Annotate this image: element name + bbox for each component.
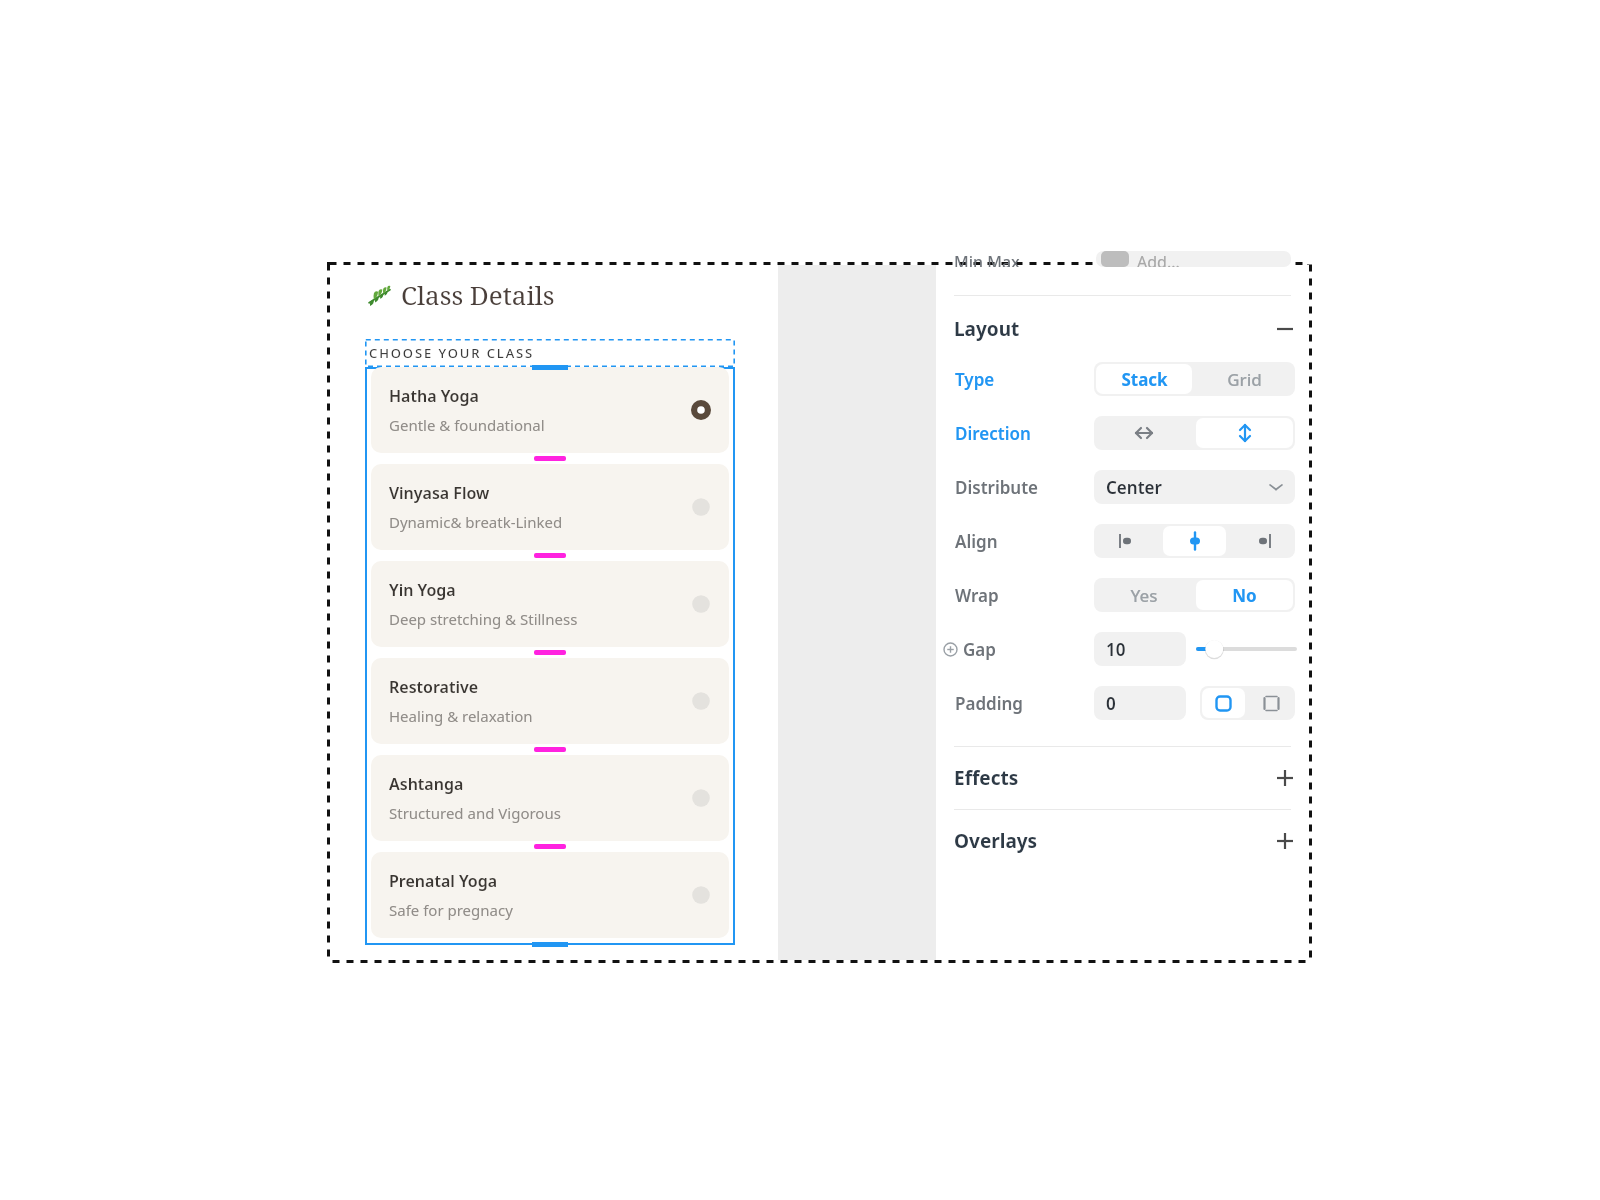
staticText: Effects: [954, 765, 1019, 791]
button[interactable]: Align start: [1096, 526, 1159, 556]
staticText: Type: [955, 368, 995, 391]
staticText: Restorative: [389, 676, 479, 698]
button[interactable]: Vertical direction: [1196, 418, 1293, 448]
staticText: Add...: [1137, 251, 1180, 267]
staticText: Yin Yoga: [389, 579, 456, 601]
staticText: Deep stretching & Stillness: [389, 609, 578, 629]
other: Expand: [1275, 831, 1295, 851]
button[interactable]: Overlays: [936, 826, 1309, 856]
staticText: Padding: [955, 692, 1023, 715]
staticText: Hatha Yoga: [389, 385, 479, 407]
button[interactable]: Restorative: [371, 658, 729, 744]
staticText: Gentle & foundational: [389, 415, 545, 435]
button[interactable]: No: [1196, 580, 1293, 610]
staticText: Structured and Vigorous: [389, 803, 561, 823]
staticText: Yes: [1130, 584, 1158, 607]
button[interactable]: Vinyasa Flow: [371, 464, 729, 550]
staticText: Gap: [963, 638, 996, 661]
button[interactable]: Center: [1094, 470, 1295, 504]
button[interactable]: Stack: [1096, 364, 1192, 394]
button[interactable]: Prenatal Yoga: [371, 852, 729, 938]
staticText: Ashtanga: [389, 773, 464, 795]
staticText: No: [1232, 584, 1257, 607]
button[interactable]: Layout: [936, 314, 1309, 344]
staticText: Class Details: [401, 277, 555, 312]
staticText: 10: [1106, 638, 1126, 661]
button[interactable]: 10: [1094, 632, 1186, 666]
staticText: Vinyasa Flow: [389, 482, 490, 504]
staticText: Layout: [954, 316, 1020, 342]
button[interactable]: Horizontal direction: [1096, 418, 1192, 448]
staticText: Center: [1106, 476, 1162, 499]
staticText: Distribute: [955, 476, 1039, 499]
button[interactable]: Hatha Yoga: [371, 367, 729, 453]
staticText: Wrap: [955, 584, 999, 607]
button[interactable]: Ashtanga: [371, 755, 729, 841]
button[interactable]: Gap slider: [1198, 635, 1295, 663]
staticText: CHOOSE YOUR CLASS: [369, 344, 535, 362]
button[interactable]: Align end: [1230, 526, 1293, 556]
other: Collapse: [1275, 319, 1295, 339]
staticText: Safe for pregnacy: [389, 900, 513, 920]
button[interactable]: Yes: [1096, 580, 1192, 610]
staticText: Align: [955, 530, 998, 553]
button[interactable]: Align center: [1163, 526, 1226, 556]
button[interactable]: Effects: [936, 763, 1309, 793]
button[interactable]: Grid: [1196, 364, 1293, 394]
button[interactable]: Uniform padding: [1202, 688, 1245, 718]
staticText: Direction: [955, 422, 1031, 445]
staticText: Stack: [1121, 368, 1168, 391]
button[interactable]: Individual padding: [1247, 686, 1295, 720]
button[interactable]: Yin Yoga: [371, 561, 729, 647]
button[interactable]: 0: [1094, 686, 1186, 720]
other: Expand: [1275, 768, 1295, 788]
staticText: Overlays: [954, 828, 1038, 854]
staticText: 0: [1106, 692, 1116, 715]
staticText: Healing & relaxation: [389, 706, 533, 726]
staticText: Min Max: [954, 251, 1020, 267]
staticText: Grid: [1227, 368, 1262, 391]
staticText: Dynamic& breatk-Linked: [389, 512, 563, 532]
staticText: Prenatal Yoga: [389, 870, 498, 892]
